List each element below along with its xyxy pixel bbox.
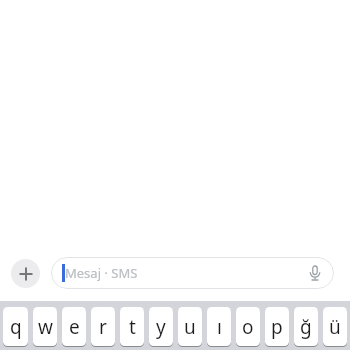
button[interactable]: u xyxy=(178,307,202,346)
button[interactable]: t xyxy=(120,307,144,346)
button[interactable]: e xyxy=(62,307,86,346)
staticText: ü xyxy=(329,314,341,340)
button[interactable] xyxy=(11,259,40,288)
button[interactable]: q xyxy=(3,307,28,346)
staticText: y xyxy=(156,314,166,340)
staticText: r xyxy=(99,314,107,340)
button[interactable]: w xyxy=(33,307,57,346)
staticText: t xyxy=(129,314,136,340)
staticText: q xyxy=(10,314,22,340)
staticText: ğ xyxy=(300,314,312,340)
button[interactable]: Mesaj · SMS xyxy=(51,257,334,289)
button[interactable]: ğ xyxy=(294,307,318,346)
staticText: Mesaj · SMS xyxy=(65,264,138,282)
staticText: e xyxy=(69,314,80,340)
button[interactable]: o xyxy=(236,307,260,346)
button[interactable]: r xyxy=(91,307,115,346)
button[interactable]: ü xyxy=(323,307,347,346)
button[interactable]: ı xyxy=(207,307,231,346)
staticText: p xyxy=(271,314,283,340)
staticText: u xyxy=(184,314,196,340)
staticText: o xyxy=(242,314,254,340)
staticText: w xyxy=(38,314,53,340)
button[interactable]: p xyxy=(265,307,289,346)
staticText: ı xyxy=(217,314,222,340)
button[interactable]: y xyxy=(149,307,173,346)
